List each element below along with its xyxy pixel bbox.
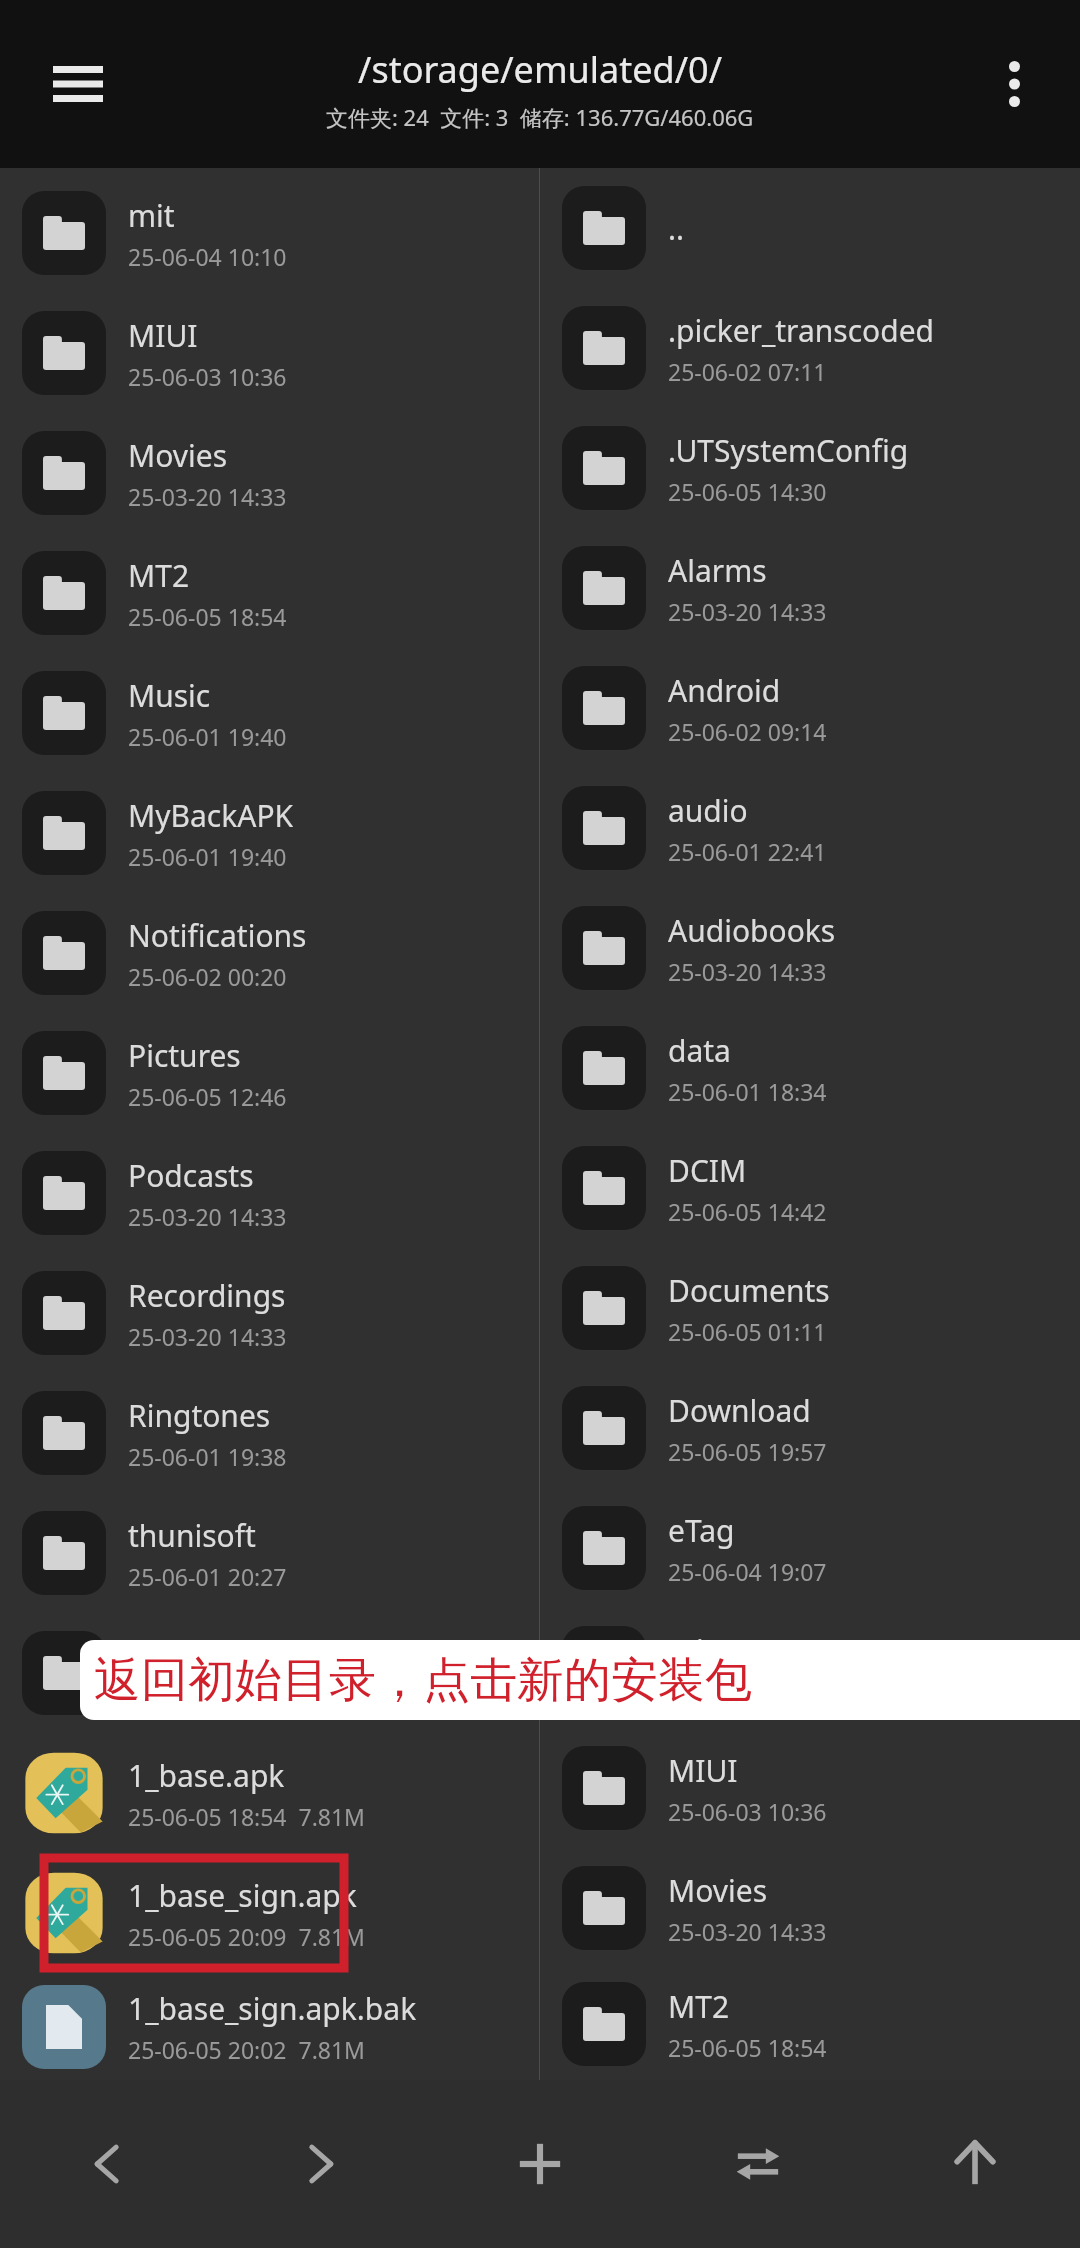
button[interactable]: audio [540,768,1080,888]
button[interactable]: Notifications [0,893,539,1013]
staticText: .. [668,208,685,249]
button[interactable]: More options [974,44,1054,124]
staticText: 25-03-20 14:33 [128,481,287,512]
staticText: 25-03-20 14:33 [668,956,827,987]
staticText: 返回初始目录，点击新的安装包 [94,1651,752,1710]
button[interactable]: New [485,2109,595,2219]
staticText: mit [668,1630,715,1671]
staticText: audio [668,790,748,831]
button[interactable]: MyBackAPK [0,773,539,893]
staticText: 25-06-05 14:42 [668,1196,827,1227]
staticText: Audiobooks [668,910,836,951]
button[interactable]: Forward [268,2109,378,2219]
button[interactable]: Ringtones [0,1373,539,1493]
button[interactable]: Up [920,2109,1030,2219]
staticText: Documents [668,1270,830,1311]
staticText: MIUI [668,1750,738,1791]
staticText: 25-06-01 20:27 [128,1561,287,1592]
staticText: 25-06-05 01:11 [668,1316,827,1347]
button[interactable]: Audiobooks [540,888,1080,1008]
staticText: mit [128,195,175,236]
staticText: MIUI [128,315,198,356]
staticText: 25-06-03 10:36 [668,1796,827,1827]
staticText: 25-06-01 18:34 [668,1076,827,1107]
staticText: MyBackAPK [128,795,294,836]
staticText: 25-03-20 14:33 [668,596,827,627]
button[interactable]: MT2 [0,533,539,653]
button[interactable]: Back [50,2109,160,2219]
button[interactable]: Swap panes [703,2109,813,2219]
staticText: 25-06-01 20:27 [128,1681,287,1712]
staticText: DCIM [668,1150,747,1191]
staticText: 25-03-20 14:33 [128,1321,287,1352]
button[interactable]: Movies [540,1848,1080,1968]
button[interactable]: Music [0,653,539,773]
staticText: 25-06-02 07:11 [668,356,827,387]
staticText: 25-06-03 10:36 [128,361,287,392]
button[interactable]: Download [540,1368,1080,1488]
button[interactable]: 1_base_sign.apk [0,1853,539,1973]
staticText: /storage/emulated/0/ [358,45,723,94]
button[interactable]: mit [540,1608,1080,1728]
staticText: 25-06-01 19:40 [128,721,287,752]
button[interactable]: .. [540,168,1080,288]
staticText: 25-06-05 18:54 [128,601,287,632]
staticText: 25-06-05 18:54 7.81M [128,1801,365,1832]
button[interactable]: Menu [38,44,118,124]
staticText: 25-06-05 12:46 [128,1081,287,1112]
staticText: Pictures [128,1035,241,1076]
staticText: .picker_transcoded [668,310,935,351]
staticText: .UTSystemConfig [668,430,909,471]
button[interactable]: MIUI [0,293,539,413]
staticText: 25-06-02 09:14 [668,716,827,747]
button[interactable]: data [540,1008,1080,1128]
staticText: Recordings [128,1275,286,1316]
button[interactable]: .picker_transcoded [540,288,1080,408]
staticText: 25-06-01 22:41 [668,836,827,867]
staticText: 25-06-04 10:10 [128,241,287,272]
staticText: 25-06-04 10:10 [668,1676,827,1707]
staticText: 25-06-05 19:57 [668,1436,827,1467]
button[interactable]: USB_download [0,1613,539,1733]
staticText: USB_download [128,1635,339,1676]
staticText: 25-06-05 14:30 [668,476,827,507]
staticText: thunisoft [128,1515,256,1556]
button[interactable]: mit [0,173,539,293]
staticText: Music [128,675,211,716]
button[interactable]: DCIM [540,1128,1080,1248]
staticText: eTag [668,1510,735,1551]
staticText: 25-06-02 00:20 [128,961,287,992]
staticText: Movies [128,435,228,476]
button[interactable]: Documents [540,1248,1080,1368]
button[interactable]: 1_base.apk [0,1733,539,1853]
staticText: 文件夹: 24 文件: 3 储存: 136.77G/460.06G [326,102,754,132]
button[interactable]: Podcasts [0,1133,539,1253]
staticText: 25-06-05 18:54 [668,2032,827,2063]
button[interactable]: Movies [0,413,539,533]
button[interactable]: thunisoft [0,1493,539,1613]
staticText: 25-06-04 19:07 [668,1556,827,1587]
button[interactable]: 1_base_sign.apk.bak [0,1973,539,2080]
button[interactable]: Android [540,648,1080,768]
button[interactable]: MT2 [540,1968,1080,2080]
button[interactable]: Alarms [540,528,1080,648]
staticText: Podcasts [128,1155,254,1196]
staticText: 25-03-20 14:33 [668,1916,827,1947]
button[interactable]: Recordings [0,1253,539,1373]
staticText: Movies [668,1870,768,1911]
staticText: Alarms [668,550,767,591]
button[interactable]: eTag [540,1488,1080,1608]
button[interactable]: .UTSystemConfig [540,408,1080,528]
staticText: data [668,1030,731,1071]
staticText: MT2 [128,555,190,596]
button[interactable]: MIUI [540,1728,1080,1848]
staticText: MT2 [668,1986,730,2027]
button[interactable]: Pictures [0,1013,539,1133]
staticText: Android [668,670,781,711]
staticText: Download [668,1390,811,1431]
staticText: Notifications [128,915,307,956]
staticText: 25-06-01 19:40 [128,841,287,872]
staticText: 1_base.apk [128,1755,285,1796]
staticText: 25-06-05 20:02 7.81M [128,2034,365,2065]
staticText: Ringtones [128,1395,271,1436]
